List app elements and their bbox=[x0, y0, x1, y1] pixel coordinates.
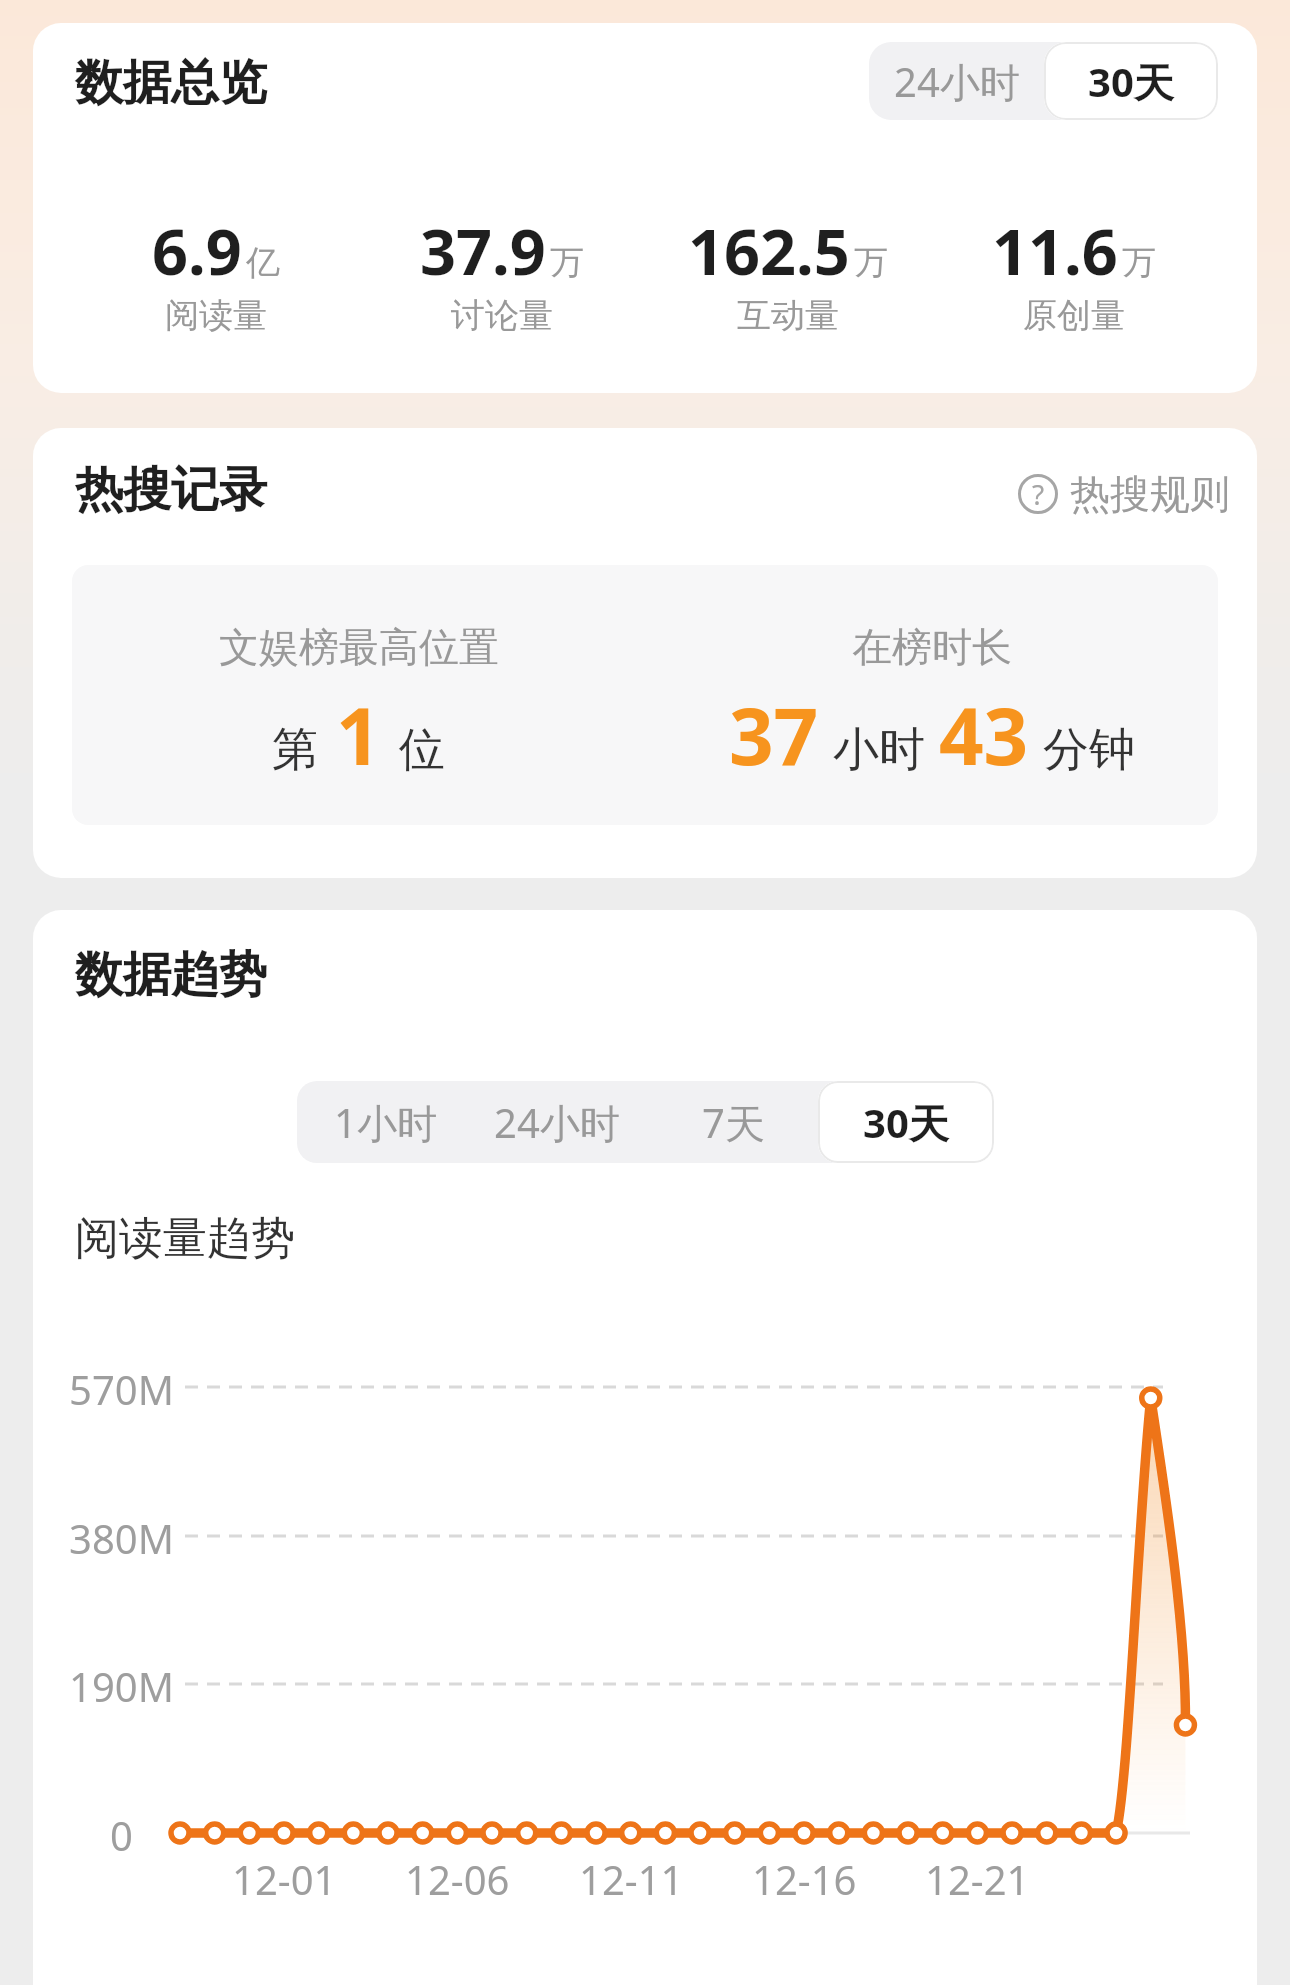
staticText: 阅读量 bbox=[165, 294, 267, 337]
staticText: 互动量 bbox=[737, 294, 839, 337]
staticText: 37 bbox=[729, 682, 819, 788]
staticText: 380M bbox=[69, 1511, 174, 1561]
staticText: 第 bbox=[272, 721, 318, 779]
staticText: 7天 bbox=[702, 1095, 765, 1150]
staticText: 万 bbox=[550, 241, 584, 284]
button[interactable]: 24小时 bbox=[869, 42, 1044, 120]
staticText: 小时 bbox=[833, 721, 925, 779]
staticText: ? bbox=[1032, 475, 1045, 513]
staticText: 0 bbox=[110, 1808, 133, 1858]
staticText: 6.9 bbox=[152, 208, 242, 294]
staticText: 12-16 bbox=[752, 1852, 857, 1902]
staticText: 12-11 bbox=[579, 1852, 684, 1902]
staticText: 数据趋势 bbox=[75, 945, 267, 1005]
button[interactable]: 24小时 bbox=[469, 1081, 645, 1163]
staticText: 文娱榜最高位置 bbox=[219, 622, 499, 672]
button[interactable]: 30天 bbox=[818, 1081, 994, 1163]
staticText: 热搜记录 bbox=[75, 460, 267, 520]
staticText: 阅读量趋势 bbox=[75, 1211, 295, 1266]
staticText: 1小时 bbox=[334, 1095, 437, 1150]
button[interactable]: 30天 bbox=[1044, 42, 1218, 120]
staticText: 万 bbox=[854, 241, 888, 284]
staticText: 11.6 bbox=[992, 208, 1118, 294]
staticText: 570M bbox=[69, 1362, 174, 1412]
staticText: 37.9 bbox=[420, 208, 546, 294]
staticText: 亿 bbox=[246, 241, 280, 284]
staticText: 162.5 bbox=[688, 208, 850, 294]
button[interactable]: 7天 bbox=[645, 1081, 821, 1163]
button[interactable]: 1小时 bbox=[297, 1081, 473, 1163]
staticText: 30天 bbox=[1088, 54, 1174, 109]
staticText: 数据总览 bbox=[75, 53, 267, 113]
staticText: 分钟 bbox=[1043, 721, 1135, 779]
staticText: 190M bbox=[69, 1659, 174, 1709]
staticText: 在榜时长 bbox=[852, 622, 1012, 672]
staticText: 1 bbox=[336, 682, 381, 788]
staticText: 热搜规则 bbox=[1070, 469, 1230, 519]
staticText: 讨论量 bbox=[451, 294, 553, 337]
staticText: 43 bbox=[939, 682, 1029, 788]
staticText: 12-21 bbox=[925, 1852, 1030, 1902]
button[interactable]: ? bbox=[1018, 454, 1230, 534]
staticText: 位 bbox=[399, 721, 445, 779]
staticText: 30天 bbox=[863, 1095, 949, 1150]
staticText: 24小时 bbox=[494, 1095, 620, 1150]
staticText: 12-01 bbox=[232, 1852, 337, 1902]
staticText: 12-06 bbox=[405, 1852, 510, 1902]
staticText: 24小时 bbox=[894, 54, 1020, 109]
staticText: 万 bbox=[1122, 241, 1156, 284]
staticText: 原创量 bbox=[1023, 294, 1125, 337]
